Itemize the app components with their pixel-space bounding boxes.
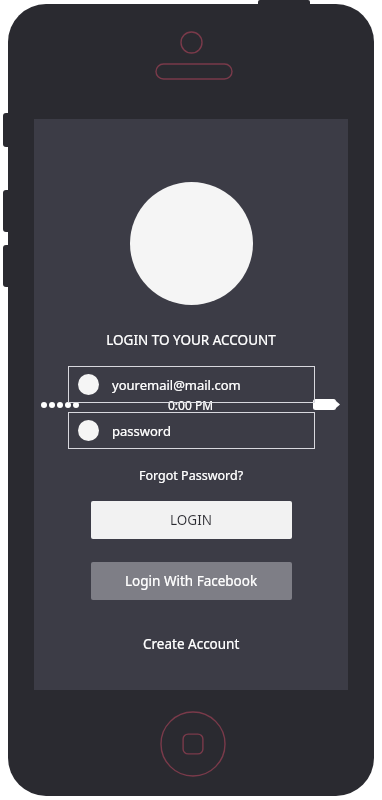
staticText: LOGIN [170,511,213,529]
other: Power [258,0,310,6]
button[interactable]: LOGIN [91,501,292,539]
staticText: 0:00 PM [168,397,214,413]
button[interactable]: Home [160,711,226,777]
staticText: Forgot Password? [139,467,244,484]
button[interactable]: password [68,412,315,449]
button[interactable]: Login With Facebook [91,562,292,600]
staticText: Create Account [143,635,240,653]
button[interactable]: Profile photo [130,182,253,305]
button[interactable]: youremail@mail.com [68,366,315,403]
staticText: LOGIN TO YOUR ACCOUNT [106,331,276,349]
button[interactable]: Forgot Password? [131,465,252,486]
staticText: password [112,422,171,440]
staticText: Login With Facebook [125,572,258,590]
button[interactable]: Create Account [135,633,248,655]
staticText: youremail@mail.com [112,376,241,394]
